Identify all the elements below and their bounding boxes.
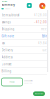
staticText: $128.00 <box>34 13 47 17</box>
staticText: Tax <box>1 41 4 45</box>
staticText: Delivery <box>1 48 12 52</box>
staticText: Saves 10% <box>24 82 32 84</box>
staticText: Contact <box>1 62 11 66</box>
staticText: $9.84 <box>38 41 47 45</box>
staticText: Free <box>41 27 47 31</box>
staticText: Address <box>1 55 12 59</box>
staticText: Shipped <box>4 8 10 10</box>
button[interactable]: Account <box>39 3 45 9</box>
button[interactable]: Wallet <box>27 3 32 8</box>
staticText: Shipping <box>1 27 14 31</box>
staticText: −$12.00 <box>34 20 47 24</box>
staticText: Code applied <box>24 80 33 82</box>
staticText: Receipt <box>1 1 7 2</box>
staticText: Summary <box>1 3 14 6</box>
staticText: Gift note <box>1 34 14 38</box>
staticText: Savings <box>1 20 10 24</box>
button[interactable]: Place order <box>33 91 45 96</box>
staticText: Item subtotal <box>1 13 19 17</box>
button[interactable]: PROMO <box>1 78 22 86</box>
staticText: Billing <box>1 69 11 73</box>
staticText: Place order <box>34 93 43 95</box>
staticText: Edit <box>42 34 47 38</box>
button[interactable]: Gift note <box>1 33 47 40</box>
staticText: Tue <box>42 48 47 52</box>
staticText: PROMO <box>9 81 14 83</box>
